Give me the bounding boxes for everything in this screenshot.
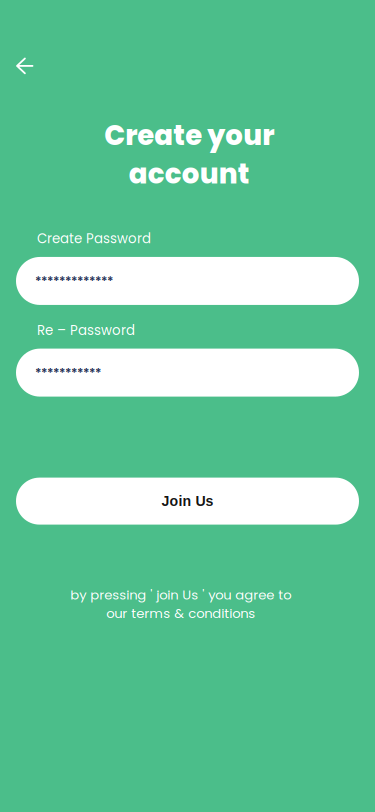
staticText: *********** [35, 364, 101, 381]
staticText: Join Us [161, 493, 213, 509]
staticText: Create your account [104, 116, 274, 193]
button[interactable]: Back [0, 48, 47, 84]
button[interactable]: Join Us [0, 478, 375, 525]
staticText: by pressing ' join Us ' you agree to our… [70, 586, 291, 623]
staticText: Re – Password [37, 321, 135, 340]
staticText: ************* [35, 272, 113, 290]
staticText: Create Password [37, 229, 151, 248]
